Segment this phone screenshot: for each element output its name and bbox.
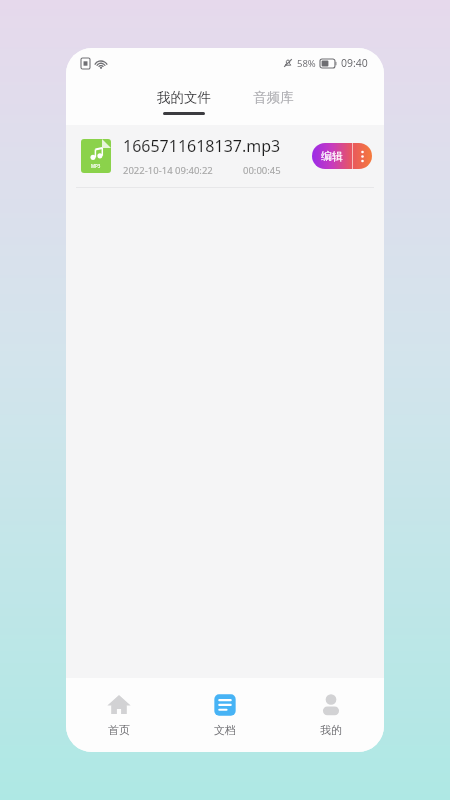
staticText: 首页 [108, 723, 130, 737]
button[interactable]: More options [353, 143, 372, 169]
staticText: 2022-10-14 09:40:22 [123, 164, 213, 177]
button[interactable]: 首页 [66, 678, 172, 752]
staticText: 我的 [320, 723, 342, 737]
button[interactable]: 我的文件 [147, 86, 221, 118]
staticText: 00:00:45 [243, 164, 281, 177]
staticText: MP3 [91, 163, 101, 169]
staticText: 编辑 [321, 149, 343, 163]
staticText: 文档 [214, 723, 236, 737]
button[interactable]: 我的 [278, 678, 384, 752]
staticText: 09:40 [341, 56, 368, 70]
button[interactable]: MP3 [66, 125, 384, 187]
staticText: 我的文件 [157, 89, 211, 106]
button[interactable]: 音频库 [243, 86, 304, 109]
staticText: 1665711618137.mp3 [123, 135, 281, 157]
staticText: 音频库 [253, 89, 294, 106]
button[interactable]: 文档 [172, 678, 278, 752]
staticText: 58% [297, 57, 316, 70]
button[interactable]: 编辑 [312, 143, 372, 169]
